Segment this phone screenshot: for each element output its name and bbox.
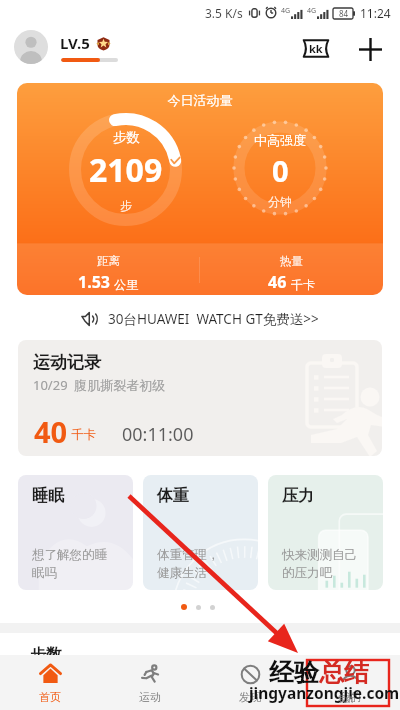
button[interactable]: 首页 bbox=[0, 655, 100, 710]
staticText: jingyanzongjie.com bbox=[249, 682, 400, 703]
button[interactable]: 体重 bbox=[143, 475, 258, 590]
staticText: 首页 bbox=[39, 690, 61, 704]
staticText: 体重 bbox=[157, 486, 189, 506]
button[interactable]: 30台HUAWEI WATCH GT免费送>> bbox=[0, 306, 400, 332]
staticText: 11:24 bbox=[360, 5, 391, 21]
staticText: kk bbox=[309, 41, 323, 56]
staticText: 想了解您的睡 眠吗 bbox=[32, 547, 107, 581]
staticText: 我的 bbox=[339, 690, 361, 704]
staticText: 0 bbox=[272, 151, 289, 190]
staticText: 千卡 bbox=[71, 427, 96, 443]
button[interactable]: 发现 bbox=[200, 655, 300, 710]
staticText: 睡眠 bbox=[32, 486, 64, 506]
staticText: 步 bbox=[120, 198, 132, 213]
staticText: 今日活动量 bbox=[17, 92, 383, 108]
staticText: 压力 bbox=[282, 486, 314, 506]
button[interactable]: 运动 bbox=[100, 655, 200, 710]
staticText: 84 bbox=[339, 8, 349, 19]
staticText: 4G bbox=[307, 6, 317, 16]
staticText: 总结 bbox=[319, 657, 369, 688]
staticText: 1.53 bbox=[78, 271, 110, 293]
staticText: 体重管理， 健康生活 bbox=[157, 547, 220, 581]
staticText: 2109 bbox=[89, 148, 163, 192]
button[interactable]: 今日活动量 bbox=[17, 83, 383, 295]
staticText: 千卡 bbox=[291, 277, 315, 292]
button[interactable]: 睡眠 bbox=[18, 475, 133, 590]
staticText: 距离 bbox=[97, 254, 120, 268]
staticText: 步数 bbox=[113, 129, 140, 146]
button[interactable]: 运动记录 bbox=[18, 340, 382, 456]
staticText: LV.5 bbox=[60, 33, 90, 53]
button[interactable]: Coupons bbox=[299, 32, 332, 65]
staticText: 快来测测自己 的压力吧 bbox=[282, 547, 357, 581]
staticText: 步数 bbox=[30, 645, 62, 665]
staticText: 4G bbox=[281, 6, 291, 16]
staticText: 10/29 腹肌撕裂者初级 bbox=[33, 376, 166, 394]
staticText: 46 bbox=[268, 271, 287, 293]
button[interactable]: Profile bbox=[14, 30, 48, 64]
staticText: 3.5 K/s bbox=[205, 5, 243, 21]
staticText: 公里 bbox=[114, 277, 138, 292]
staticText: 热量 bbox=[280, 254, 303, 268]
staticText: 分钟 bbox=[268, 194, 292, 209]
button[interactable]: 压力 bbox=[268, 475, 383, 590]
staticText: 我的 bbox=[338, 694, 354, 704]
button[interactable]: Add bbox=[353, 32, 387, 66]
staticText: 运动记录 bbox=[33, 352, 101, 373]
staticText: 发现 bbox=[239, 690, 261, 704]
staticText: 运动 bbox=[139, 690, 161, 704]
button[interactable]: 我的 bbox=[300, 655, 400, 710]
staticText: 经验 bbox=[269, 657, 319, 688]
staticText: 30台HUAWEI WATCH GT免费送>> bbox=[108, 310, 319, 328]
staticText: 40 bbox=[34, 412, 68, 451]
staticText: 中高强度 bbox=[254, 132, 306, 148]
staticText: 00:11:00 bbox=[122, 422, 194, 447]
